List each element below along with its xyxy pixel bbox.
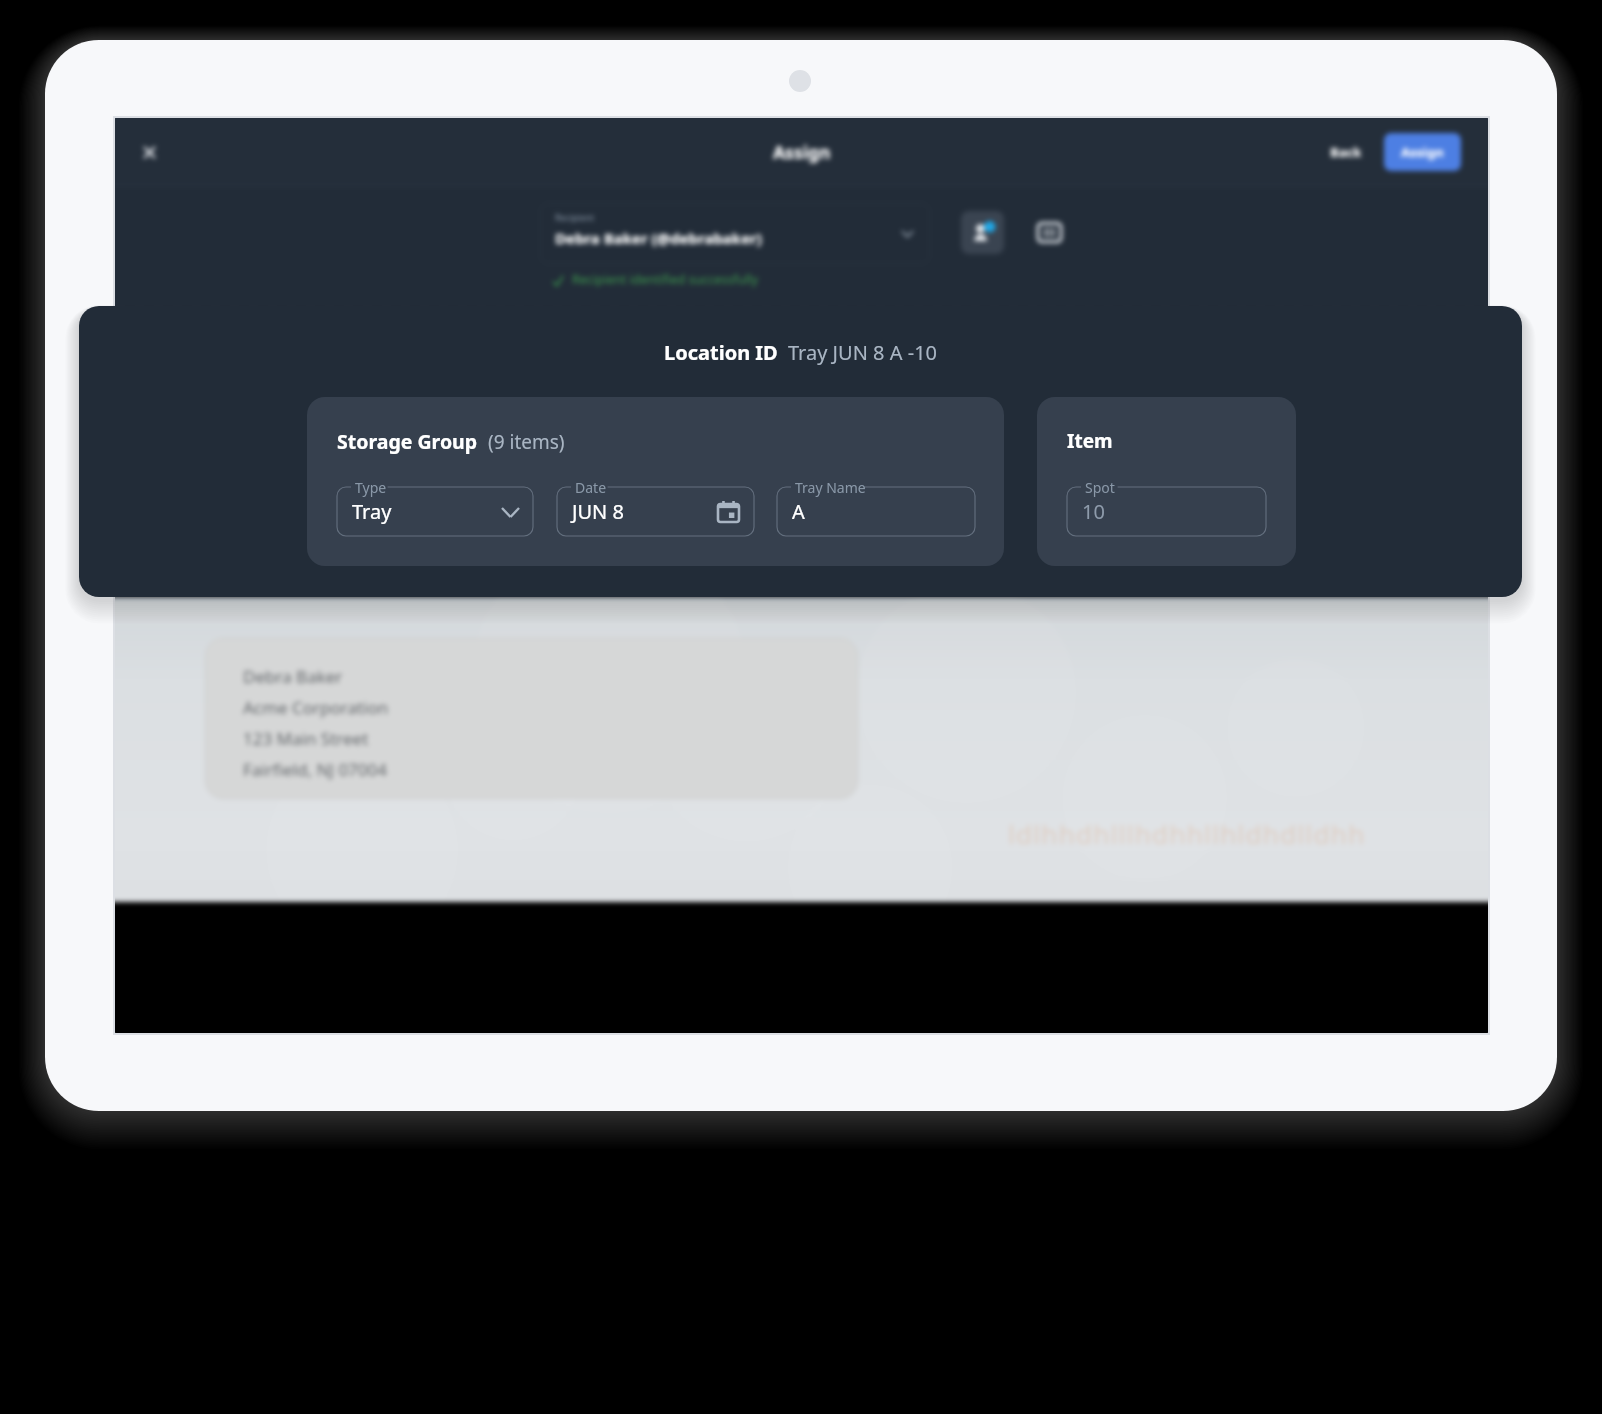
staticText: Spot xyxy=(1085,478,1115,497)
staticText: 123 Main Street xyxy=(243,727,369,750)
button[interactable]: Assign xyxy=(1384,133,1461,171)
staticText: Assign xyxy=(1401,143,1444,161)
staticText: Assign xyxy=(773,140,831,164)
staticText: Type xyxy=(355,478,387,497)
staticText: Debra Baker (@debrabaker) xyxy=(555,228,762,248)
button[interactable]: Spot xyxy=(1067,487,1266,536)
staticText: Debra Baker xyxy=(243,665,343,688)
button[interactable]: Add recipient xyxy=(961,211,1004,254)
button[interactable]: Pick date xyxy=(713,496,744,527)
staticText: Tray JUN 8 A -10 xyxy=(788,339,938,366)
staticText: ldlhhdhlllhdhhllhldhdlldhh xyxy=(1008,816,1366,851)
staticText: Storage Group xyxy=(337,428,478,455)
staticText: JUN 8 xyxy=(572,498,624,525)
button[interactable]: Tray Name xyxy=(777,487,975,536)
staticText: Back xyxy=(1330,143,1362,161)
button[interactable]: Scan xyxy=(1028,211,1071,254)
staticText: Tray xyxy=(352,498,392,525)
staticText: Acme Corporation xyxy=(243,696,389,719)
staticText: A xyxy=(792,498,805,525)
staticText: Date xyxy=(575,478,607,497)
button[interactable]: Type xyxy=(337,487,533,536)
button[interactable]: Item xyxy=(1037,397,1296,566)
button[interactable]: Recipient xyxy=(540,203,930,264)
button[interactable]: Storage Group xyxy=(307,397,1004,566)
button[interactable]: Open Type options xyxy=(495,497,525,527)
staticText: 10 xyxy=(1082,498,1105,525)
button[interactable]: Close xyxy=(129,132,169,172)
staticText: Location ID xyxy=(664,339,778,366)
staticText: Tray Name xyxy=(795,478,866,497)
staticText: Recipient xyxy=(555,211,595,223)
button[interactable]: Back xyxy=(1320,137,1372,167)
staticText: (9 items) xyxy=(488,429,565,455)
staticText: Item xyxy=(1067,428,1113,454)
staticText: Recipient identified successfully xyxy=(572,271,759,288)
button[interactable]: Date xyxy=(557,487,754,536)
staticText: Fairfield, NJ 07004 xyxy=(243,758,388,781)
